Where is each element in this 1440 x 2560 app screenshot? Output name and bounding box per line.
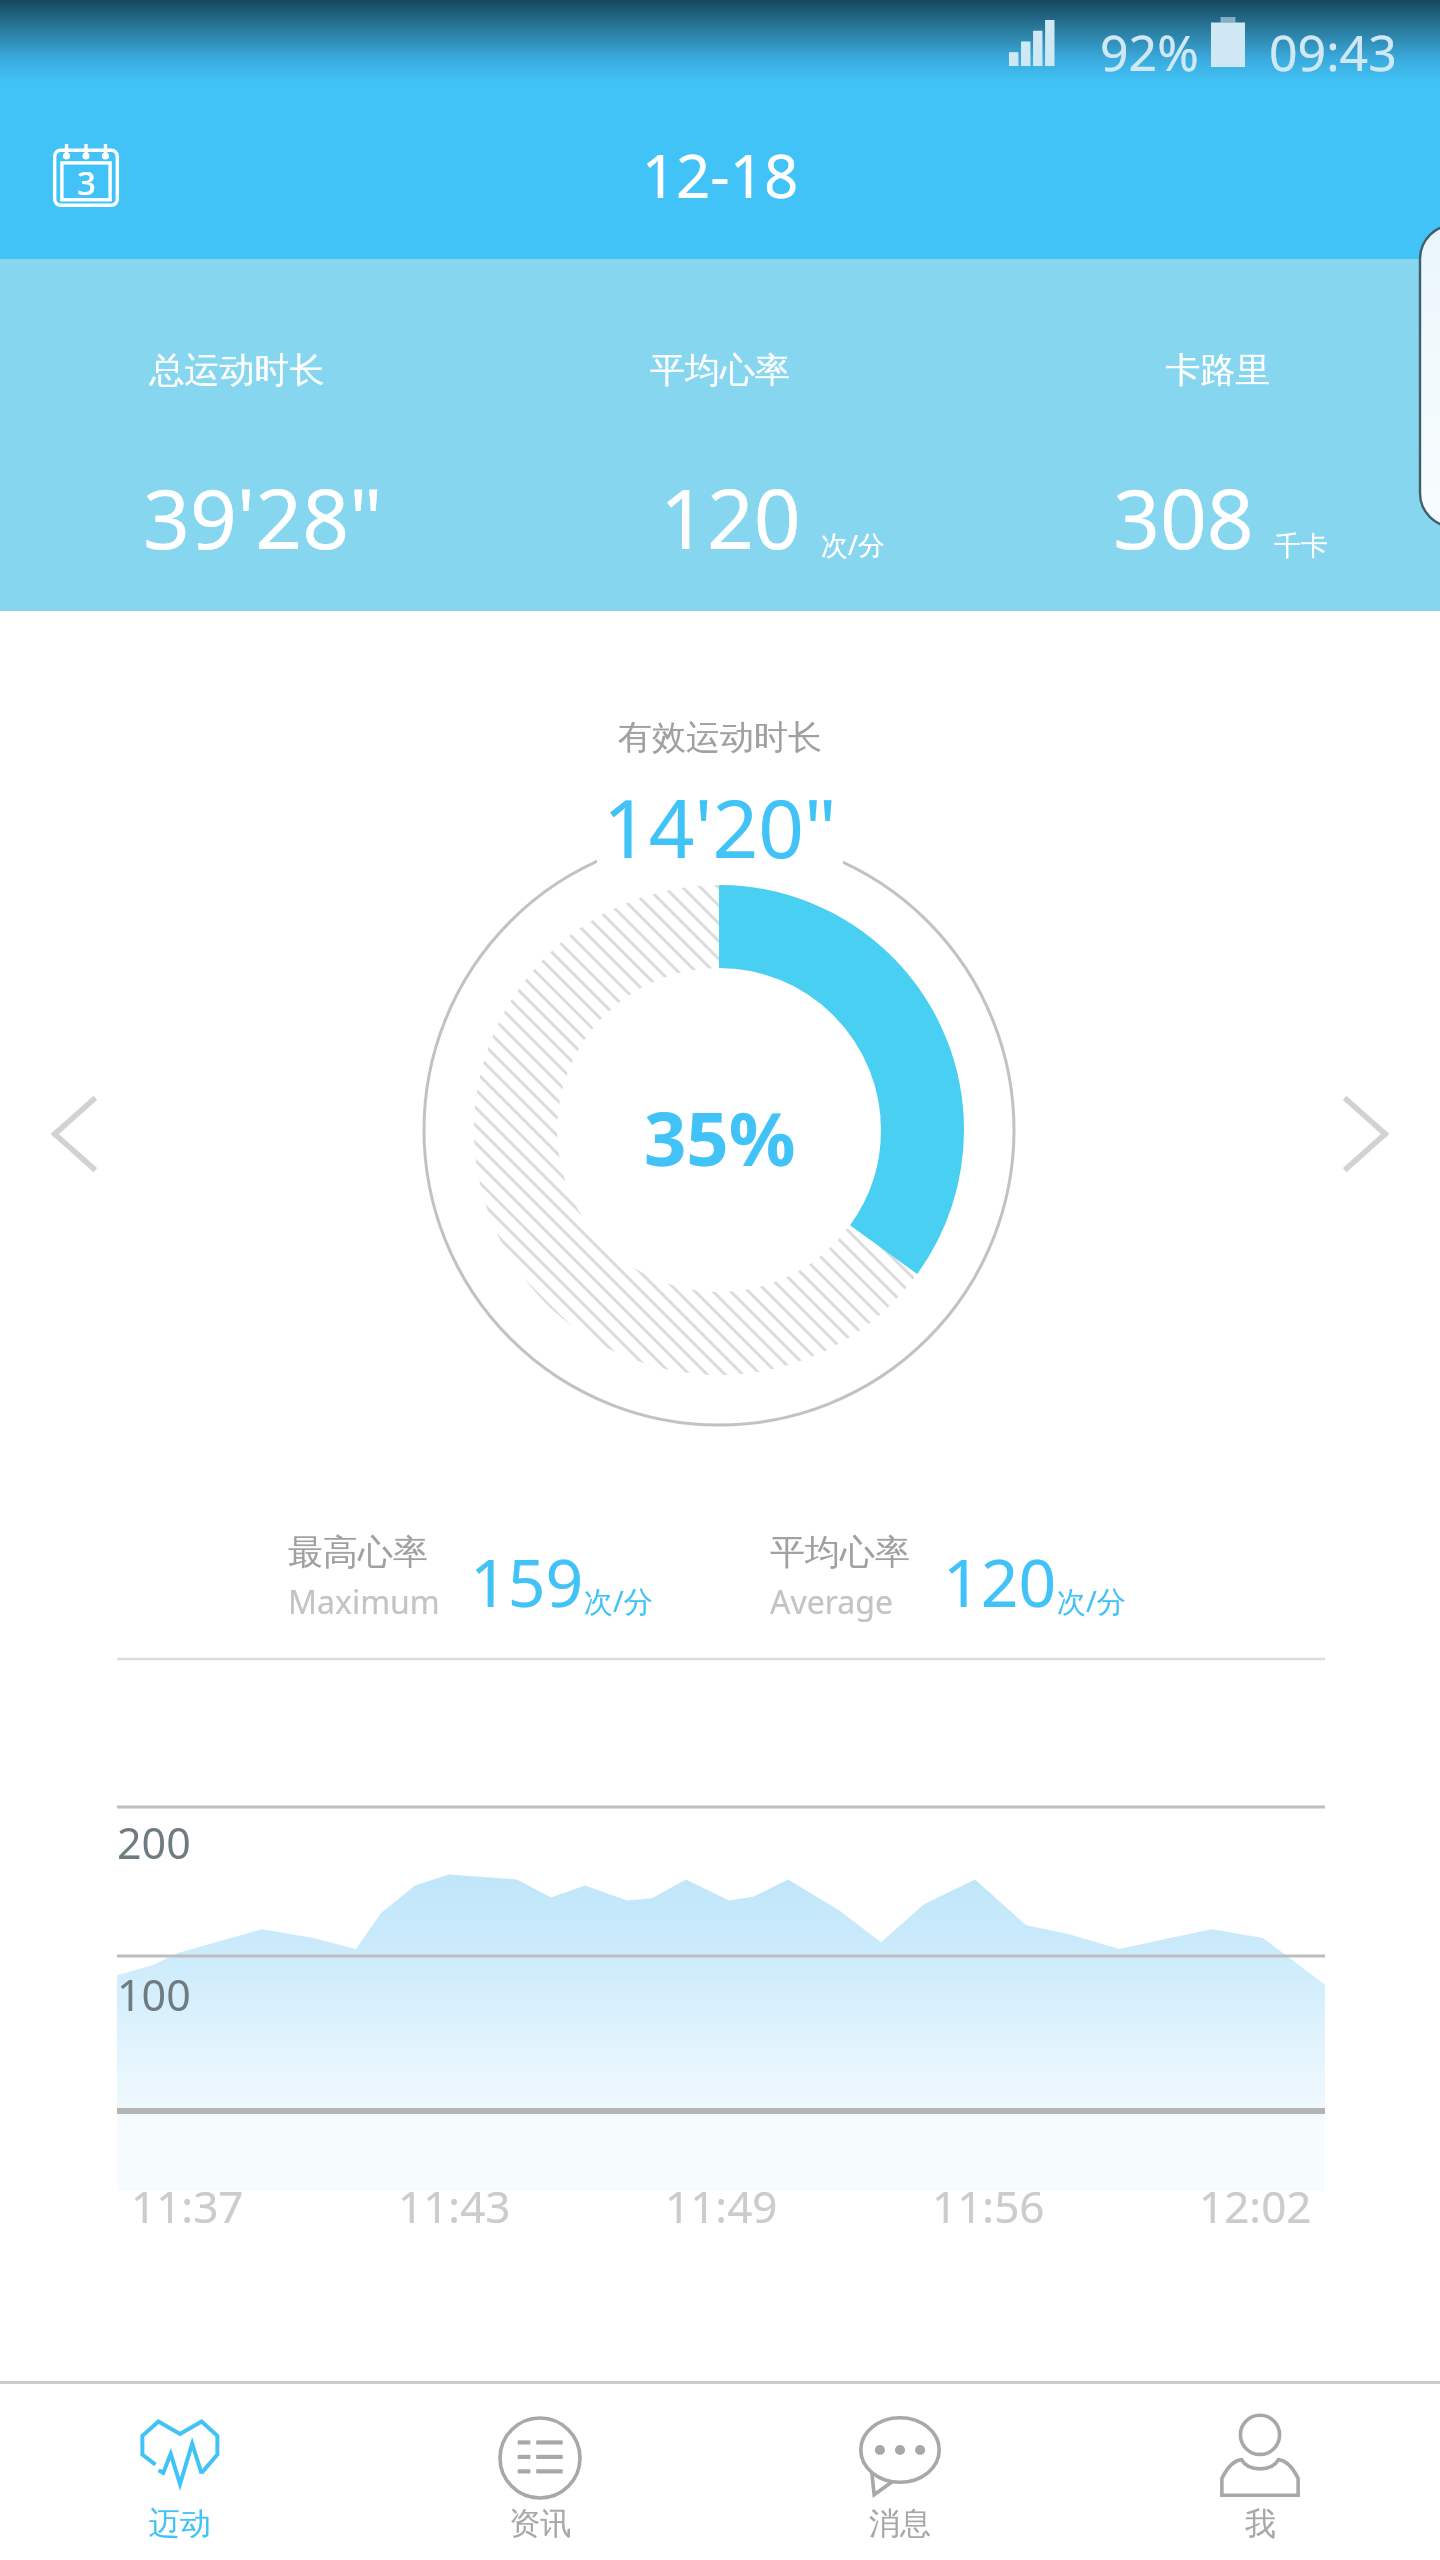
- button[interactable]: 消息: [720, 2384, 1080, 2560]
- staticText: 159: [470, 1536, 584, 1626]
- staticText: 11:56: [932, 2176, 1045, 2236]
- staticText: 3: [77, 160, 96, 205]
- staticText: Maximum: [288, 1580, 440, 1624]
- staticText: 39'28": [143, 461, 383, 573]
- staticText: 次/分: [821, 526, 886, 563]
- staticText: 11:37: [131, 2176, 244, 2236]
- staticText: 平均心率: [590, 348, 850, 392]
- button[interactable]: 我: [1080, 2384, 1440, 2560]
- button[interactable]: Next day: [1296, 1064, 1436, 1204]
- staticText: 有效运动时长: [0, 716, 1440, 759]
- staticText: 最高心率: [288, 1530, 428, 1574]
- staticText: 卡路里: [1088, 348, 1348, 392]
- staticText: 92%: [1100, 18, 1199, 86]
- staticText: 200: [117, 1813, 191, 1872]
- button[interactable]: 迈动: [0, 2384, 360, 2560]
- staticText: 11:43: [398, 2176, 511, 2236]
- staticText: 千卡: [1274, 529, 1328, 563]
- staticText: 12-18: [0, 134, 1440, 216]
- staticText: 我: [1245, 2504, 1276, 2543]
- staticText: 12:02: [1199, 2176, 1312, 2236]
- staticText: 120: [943, 1536, 1057, 1626]
- staticText: 总运动时长: [107, 348, 367, 392]
- staticText: 100: [117, 1965, 191, 2024]
- staticText: 平均心率: [770, 1530, 910, 1574]
- button[interactable]: 资讯: [360, 2384, 720, 2560]
- staticText: 308: [1113, 461, 1254, 573]
- staticText: 14'20": [603, 772, 837, 881]
- staticText: 120: [660, 461, 801, 573]
- staticText: 35%: [644, 1087, 796, 1188]
- staticText: 11:49: [665, 2176, 778, 2236]
- staticText: 次/分: [1057, 1581, 1126, 1621]
- staticText: 09:43: [1269, 18, 1397, 86]
- button[interactable]: Previous day: [4, 1064, 144, 1204]
- staticText: Average: [770, 1580, 894, 1624]
- staticText: 资讯: [509, 2504, 571, 2543]
- staticText: 次/分: [584, 1581, 653, 1621]
- staticText: 消息: [869, 2504, 931, 2543]
- button[interactable]: Calendar: [35, 125, 137, 225]
- staticText: 迈动: [149, 2504, 211, 2543]
